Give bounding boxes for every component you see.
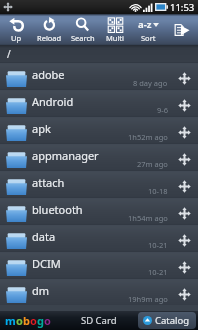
button[interactable]: Move xyxy=(176,259,192,275)
staticText: 19h9m ago xyxy=(128,294,168,304)
button[interactable]: Move xyxy=(176,178,192,194)
staticText: bluetooth xyxy=(32,202,128,217)
button[interactable]: Paste xyxy=(165,14,198,45)
staticText: Multi xyxy=(106,33,125,43)
button[interactable]: bluetooth xyxy=(0,197,198,224)
button[interactable]: Move xyxy=(176,205,192,221)
staticText: b xyxy=(23,313,30,328)
staticText: Sort xyxy=(141,33,156,43)
staticText: Search xyxy=(71,33,95,43)
staticText: 27m ago xyxy=(137,159,168,169)
button[interactable]: adobe xyxy=(0,62,198,89)
staticText: Catalog xyxy=(155,314,190,327)
button[interactable]: Multi xyxy=(99,17,132,43)
button[interactable]: DCIM xyxy=(0,251,198,278)
staticText: 10-21 xyxy=(148,267,168,277)
button[interactable]: dm xyxy=(0,278,198,305)
button[interactable]: appmanager xyxy=(0,143,198,170)
staticText: / xyxy=(7,47,11,61)
button[interactable]: Search xyxy=(66,17,99,43)
staticText: 11:53 xyxy=(170,1,195,14)
staticText: DCIM xyxy=(32,256,148,271)
staticText: data xyxy=(32,229,148,244)
button[interactable]: Move xyxy=(176,70,192,86)
button[interactable]: Move xyxy=(176,97,192,113)
button[interactable]: Move xyxy=(176,232,192,248)
staticText: a-z xyxy=(138,18,152,31)
staticText: Reload xyxy=(37,33,62,43)
staticText: dm xyxy=(32,283,128,298)
staticText: adobe xyxy=(32,67,133,82)
staticText: o xyxy=(30,313,37,328)
staticText: o xyxy=(16,313,23,328)
staticText: SD Card xyxy=(81,314,117,327)
staticText: appmanager xyxy=(32,148,137,163)
button[interactable]: Android xyxy=(0,89,198,116)
staticText: 9-6 xyxy=(157,105,168,115)
staticText: Up xyxy=(11,33,22,43)
button[interactable]: a-z xyxy=(132,17,165,43)
staticText: 10-18 xyxy=(148,186,168,196)
staticText: o xyxy=(44,313,51,328)
button[interactable]: Move xyxy=(176,286,192,302)
button[interactable]: Catalog xyxy=(138,312,196,329)
staticText: Android xyxy=(32,94,157,109)
button[interactable]: data xyxy=(0,224,198,251)
button[interactable]: Up xyxy=(0,17,33,43)
button[interactable]: Reload xyxy=(33,17,66,43)
button[interactable]: apk xyxy=(0,116,198,143)
staticText: 1h54m ago xyxy=(128,213,168,223)
staticText: 1h52m ago xyxy=(128,132,168,142)
staticText: g xyxy=(37,313,44,328)
staticText: attach xyxy=(32,175,148,190)
button[interactable]: Move xyxy=(176,151,192,167)
button[interactable]: Move xyxy=(176,124,192,140)
staticText: apk xyxy=(32,121,128,136)
button[interactable]: attach xyxy=(0,170,198,197)
staticText: 8 day ago xyxy=(133,78,168,88)
staticText: 10-21 xyxy=(148,240,168,250)
staticText: m xyxy=(5,313,16,328)
